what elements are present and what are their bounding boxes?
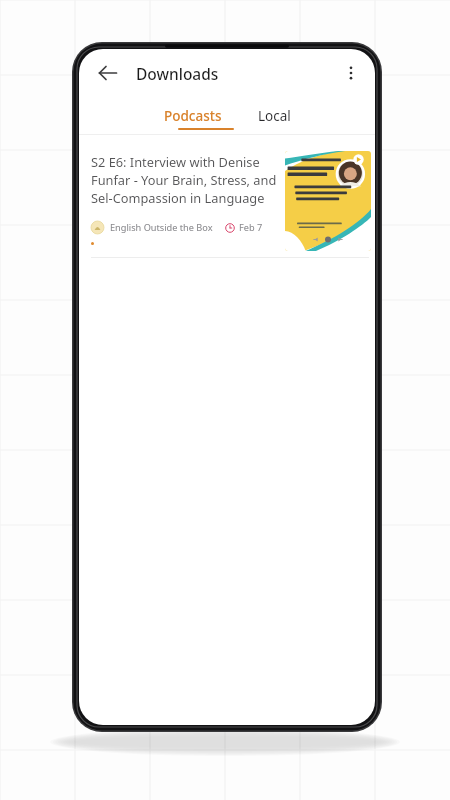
button[interactable]: Local [247, 102, 302, 130]
button[interactable]: S2 E6: Interview with Denise Funfar - Yo… [79, 145, 375, 257]
staticText: Podcasts [164, 107, 222, 125]
staticText: Local [258, 107, 291, 125]
staticText: English Outside the Box [110, 221, 213, 234]
staticText: S2 E6: Interview with Denise Funfar - Yo… [91, 153, 277, 207]
staticText: Feb 7 [239, 221, 263, 234]
button[interactable]: Episode artwork [285, 151, 371, 251]
staticText: Downloads [136, 63, 219, 84]
button[interactable]: Podcasts [153, 102, 233, 130]
button[interactable]: More options [336, 58, 366, 88]
button[interactable]: Back [92, 57, 124, 89]
